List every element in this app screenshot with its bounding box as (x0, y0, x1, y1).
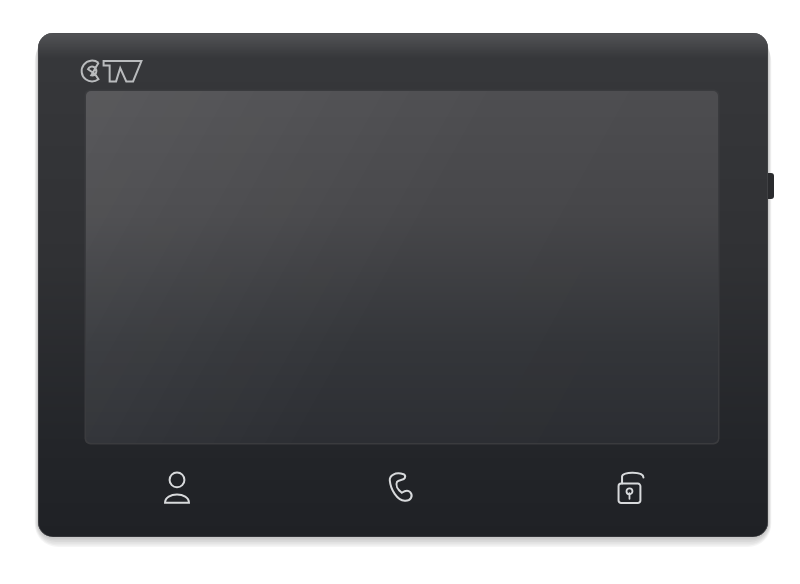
button[interactable]: Unlock door (588, 458, 672, 516)
button[interactable]: Contacts (135, 458, 219, 516)
other: CTV logo (82, 58, 142, 84)
button[interactable]: Call (358, 458, 442, 516)
